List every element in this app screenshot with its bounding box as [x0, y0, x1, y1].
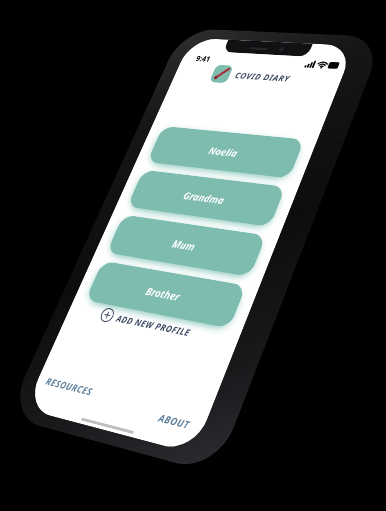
staticText: Grandma — [93, 191, 142, 206]
staticText: Noelia — [100, 138, 134, 153]
button[interactable]: ADD NEW PROFILE — [57, 329, 164, 344]
staticText: Mum — [104, 244, 131, 259]
button[interactable]: ABOUT — [168, 415, 202, 428]
staticText: RESOURCES — [28, 407, 85, 420]
staticText: Brother — [97, 297, 137, 312]
button[interactable]: Grandma — [31, 176, 203, 220]
button[interactable]: RESOURCES — [28, 407, 85, 420]
button[interactable]: Brother — [31, 282, 203, 326]
button[interactable]: Noelia — [31, 123, 203, 167]
button[interactable]: Mum — [31, 229, 203, 273]
staticText: ABOUT — [168, 415, 202, 428]
